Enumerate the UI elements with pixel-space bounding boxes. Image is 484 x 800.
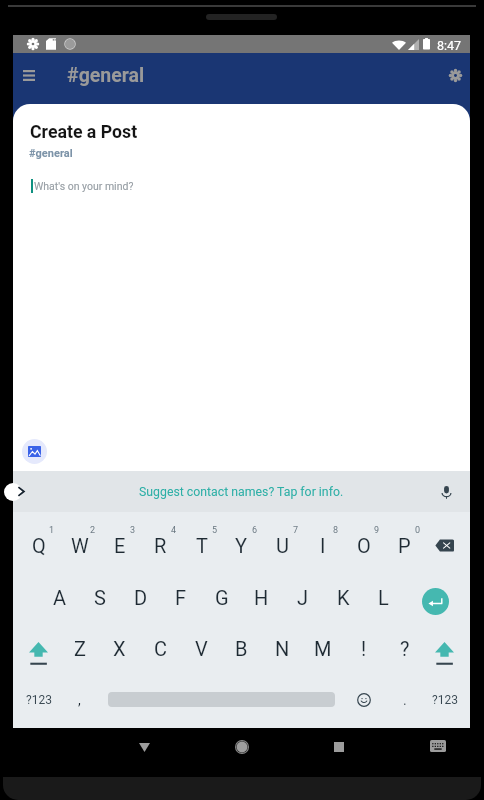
- staticText: Create a Post: [30, 122, 138, 143]
- button[interactable]: Open navigation menu: [5, 51, 53, 99]
- staticText: Suggest contact names? Tap for info.: [139, 485, 344, 499]
- button[interactable]: ?: [384, 623, 425, 674]
- button[interactable]: 8: [302, 522, 343, 573]
- button[interactable]: A: [39, 572, 80, 623]
- staticText: D: [134, 586, 148, 609]
- button[interactable]: L: [363, 572, 404, 623]
- button[interactable]: K: [323, 572, 364, 623]
- staticText: .: [403, 692, 407, 708]
- button[interactable]: Space: [99, 674, 343, 725]
- staticText: T: [196, 534, 208, 557]
- staticText: F: [175, 586, 187, 609]
- button[interactable]: 9: [343, 522, 384, 573]
- button[interactable]: Symbols: [18, 674, 59, 725]
- staticText: U: [276, 534, 289, 557]
- staticText: B: [235, 637, 248, 660]
- button[interactable]: 0: [384, 522, 425, 573]
- button[interactable]: 1: [18, 522, 59, 573]
- button[interactable]: Attach image: [22, 439, 47, 464]
- staticText: J: [297, 586, 309, 609]
- staticText: 6: [252, 525, 258, 536]
- staticText: E: [114, 534, 126, 557]
- staticText: 3: [130, 525, 136, 536]
- staticText: 4: [171, 525, 177, 536]
- button[interactable]: Symbols: [424, 674, 465, 725]
- staticText: ?123: [26, 693, 52, 707]
- staticText: 0: [415, 525, 421, 536]
- staticText: C: [154, 637, 168, 660]
- button[interactable]: 6: [221, 522, 262, 573]
- button[interactable]: N: [262, 623, 303, 674]
- staticText: X: [113, 637, 126, 660]
- staticText: K: [337, 586, 350, 609]
- button[interactable]: C: [140, 623, 181, 674]
- staticText: 2: [90, 525, 96, 536]
- button[interactable]: Voice input: [436, 482, 456, 502]
- button[interactable]: .: [384, 674, 425, 725]
- staticText: ?123: [432, 693, 458, 707]
- staticText: I: [320, 534, 326, 557]
- staticText: O: [357, 534, 371, 557]
- staticText: #general: [67, 64, 145, 87]
- button[interactable]: F: [160, 572, 201, 623]
- button[interactable]: D: [120, 572, 161, 623]
- button[interactable]: G: [201, 572, 242, 623]
- staticText: W: [71, 534, 89, 557]
- button[interactable]: H: [241, 572, 282, 623]
- staticText: ?: [400, 637, 410, 660]
- staticText: 1: [49, 525, 55, 536]
- staticText: 5: [212, 525, 218, 536]
- button[interactable]: S: [79, 572, 120, 623]
- staticText: A: [53, 586, 67, 609]
- staticText: #general: [29, 147, 73, 160]
- button[interactable]: 4: [140, 522, 181, 573]
- button[interactable]: Emoji: [343, 674, 384, 725]
- button[interactable]: Recent apps: [319, 727, 359, 767]
- button[interactable]: 2: [59, 522, 100, 573]
- button[interactable]: Z: [59, 623, 100, 674]
- button[interactable]: Shift: [424, 623, 465, 674]
- button[interactable]: Switch keyboard: [418, 726, 458, 766]
- button[interactable]: Settings: [433, 53, 477, 97]
- staticText: R: [154, 534, 167, 557]
- button[interactable]: 7: [262, 522, 303, 573]
- staticText: Q: [32, 534, 46, 557]
- button[interactable]: Home: [222, 727, 262, 767]
- staticText: 9: [374, 525, 380, 536]
- button[interactable]: Backspace: [424, 522, 465, 573]
- staticText: M: [314, 637, 332, 660]
- staticText: H: [254, 586, 269, 609]
- staticText: 8: [333, 525, 339, 536]
- button[interactable]: X: [99, 623, 140, 674]
- button[interactable]: V: [181, 623, 222, 674]
- button[interactable]: !: [343, 623, 384, 674]
- staticText: 7: [293, 525, 299, 536]
- staticText: Y: [235, 534, 248, 557]
- button[interactable]: J: [282, 572, 323, 623]
- staticText: !: [361, 637, 367, 660]
- staticText: S: [94, 586, 106, 609]
- staticText: P: [398, 534, 411, 557]
- staticText: V: [195, 637, 208, 660]
- staticText: G: [215, 586, 229, 609]
- button[interactable]: Shift: [18, 623, 59, 674]
- button[interactable]: Back: [124, 727, 164, 767]
- staticText: L: [378, 586, 389, 609]
- button[interactable]: More suggestions: [4, 483, 22, 501]
- staticText: ,: [78, 692, 81, 708]
- button[interactable]: Enter: [422, 588, 449, 615]
- staticText: What's on your mind?: [34, 180, 134, 192]
- button[interactable]: 3: [99, 522, 140, 573]
- staticText: N: [275, 637, 290, 660]
- button[interactable]: ,: [59, 674, 100, 725]
- button[interactable]: B: [221, 623, 262, 674]
- staticText: 8:47: [437, 38, 462, 53]
- button[interactable]: M: [302, 623, 343, 674]
- staticText: Z: [74, 637, 86, 660]
- button[interactable]: 5: [181, 522, 222, 573]
